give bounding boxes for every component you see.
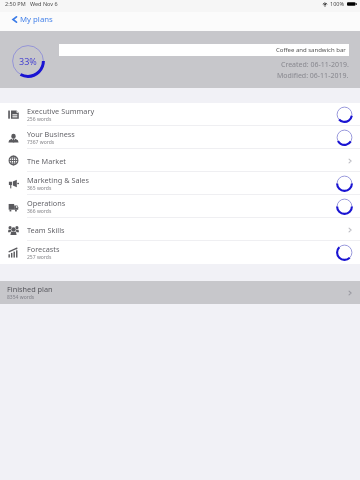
button[interactable]: Forecasts xyxy=(0,241,360,264)
button[interactable]: Executive Summary xyxy=(0,103,360,126)
staticText: 256 words xyxy=(27,116,52,123)
staticText: 365 words xyxy=(27,185,52,192)
staticText: 2:50 PM xyxy=(5,0,26,7)
staticText: 257 words xyxy=(27,254,52,261)
staticText: 7367 words xyxy=(27,139,55,146)
button[interactable]: Back to My plans xyxy=(0,13,59,30)
staticText: Operations xyxy=(27,198,66,208)
button[interactable]: Team Skills xyxy=(0,218,360,241)
staticText: Modified: 06-11-2019. xyxy=(277,71,349,81)
staticText: Finished plan xyxy=(7,284,53,294)
staticText: 8354 words xyxy=(7,294,35,301)
staticText: Marketing & Sales xyxy=(27,175,89,185)
staticText: The Market xyxy=(27,156,66,166)
staticText: 366 words xyxy=(27,208,52,215)
button[interactable]: Your Business xyxy=(0,126,360,149)
staticText: Coffee and sandwich bar xyxy=(276,46,346,54)
staticText: Created: 06-11-2019. xyxy=(281,60,349,70)
button[interactable]: Operations xyxy=(0,195,360,218)
staticText: 100% xyxy=(330,0,345,7)
button[interactable]: Finished plan xyxy=(0,281,360,304)
staticText: Your Business xyxy=(27,129,75,139)
staticText: Executive Summary xyxy=(27,106,95,116)
staticText: Team Skills xyxy=(27,225,65,235)
staticText: Forecasts xyxy=(27,244,60,254)
button[interactable]: The Market xyxy=(0,149,360,172)
staticText: Wed Nov 6 xyxy=(30,0,58,7)
staticText: My plans xyxy=(20,14,53,25)
staticText: 33% xyxy=(19,55,37,67)
button[interactable]: Coffee and sandwich bar xyxy=(59,44,349,56)
button[interactable]: Marketing & Sales xyxy=(0,172,360,195)
